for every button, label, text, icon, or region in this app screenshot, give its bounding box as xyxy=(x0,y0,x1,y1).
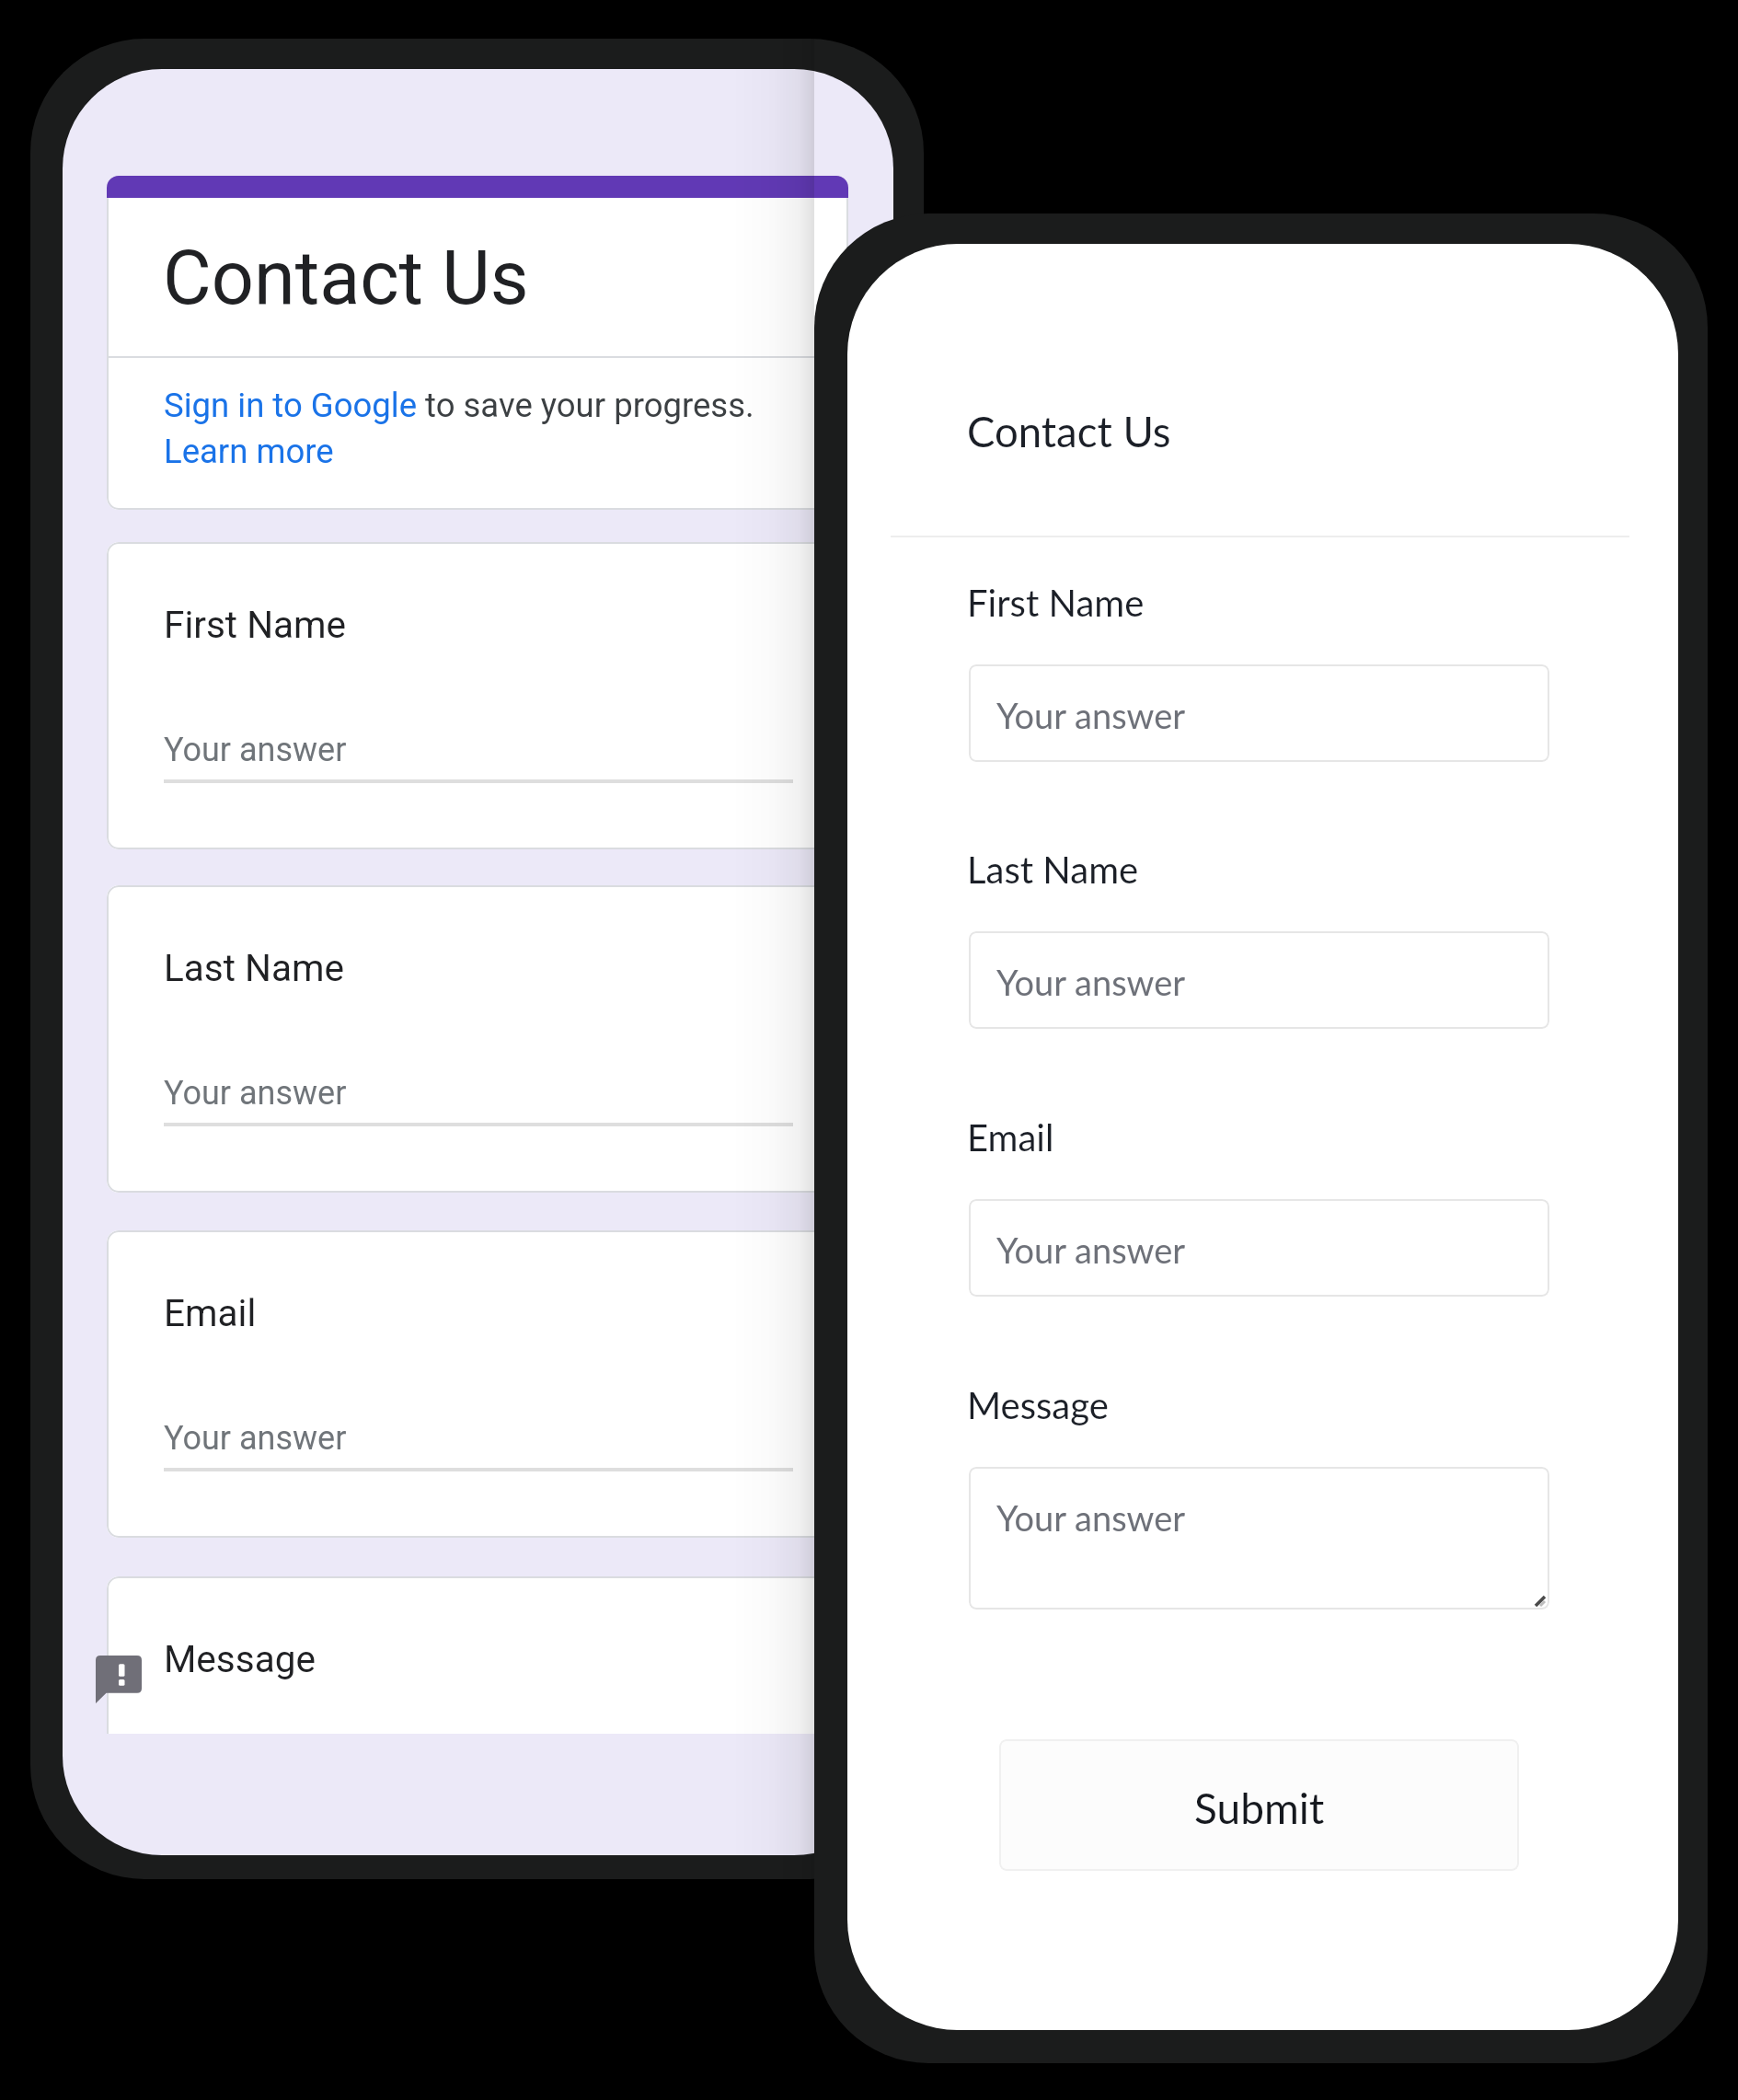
staticText: Your answer xyxy=(996,1496,1186,1539)
staticText: Email xyxy=(967,1115,1054,1160)
button[interactable]: Submit xyxy=(999,1739,1519,1871)
staticText: Your answer xyxy=(164,731,347,769)
button[interactable]: Your answer xyxy=(969,1199,1549,1297)
staticText: Contact Us xyxy=(163,235,529,322)
button[interactable]: Your answer xyxy=(969,931,1549,1029)
staticText: Last Name xyxy=(967,848,1139,892)
staticText: Your answer xyxy=(164,1419,347,1458)
button[interactable]: Comment xyxy=(96,1656,142,1703)
staticText: Your answer xyxy=(996,961,1186,1003)
staticText: Contact Us xyxy=(967,406,1171,456)
staticText: Message xyxy=(164,1637,316,1680)
staticText: Your answer xyxy=(164,1074,347,1113)
staticText: First Name xyxy=(967,581,1145,625)
button[interactable]: Your answer xyxy=(969,1467,1549,1610)
staticText: Email xyxy=(164,1291,257,1334)
button[interactable]: Your answer xyxy=(969,664,1549,762)
staticText: Last Name xyxy=(164,946,344,989)
staticText: Message xyxy=(967,1383,1109,1427)
button[interactable]: Last Name xyxy=(107,885,848,1193)
staticText: Your answer xyxy=(996,694,1186,736)
staticText: Your answer xyxy=(996,1229,1186,1271)
button[interactable]: Message xyxy=(107,1576,848,1734)
button[interactable]: Email xyxy=(107,1230,848,1538)
button[interactable]: Contact Us xyxy=(107,176,848,510)
button[interactable]: Resize text area xyxy=(1528,1589,1548,1610)
button[interactable]: First Name xyxy=(107,542,848,849)
staticText: First Name xyxy=(164,603,347,646)
button[interactable]: Sign in to Google to save your progress.… xyxy=(164,386,764,471)
staticText: Submit xyxy=(1194,1783,1325,1833)
